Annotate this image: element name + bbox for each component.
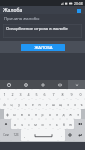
staticText: е <box>32 102 34 106</box>
button[interactable]: ъ <box>78 99 85 109</box>
button[interactable]: Оскорбление игрока в жалобе <box>3 24 82 38</box>
button[interactable]: 2 <box>8 89 16 99</box>
button[interactable]: о <box>46 109 53 119</box>
button[interactable]: и <box>39 119 46 129</box>
button[interactable]: 4 <box>24 89 32 99</box>
staticText: ю <box>69 122 72 126</box>
staticText: ц <box>10 102 13 106</box>
button[interactable]: й <box>0 99 8 109</box>
button[interactable]: у <box>15 99 22 109</box>
staticText: 2 <box>11 92 14 97</box>
staticText: э <box>77 112 79 116</box>
staticText: и <box>41 122 44 126</box>
button[interactable]: Удалить <box>74 119 85 129</box>
staticText: . <box>61 133 62 138</box>
button[interactable]: Свернуть <box>68 80 85 89</box>
staticText: 123 <box>13 133 19 137</box>
staticText: ш <box>52 102 55 106</box>
button[interactable]: е <box>29 99 36 109</box>
staticText: 1 <box>3 92 6 97</box>
button[interactable]: з <box>64 99 71 109</box>
staticText: 0 <box>79 92 82 97</box>
button[interactable]: Shift <box>0 119 11 129</box>
button[interactable]: в <box>18 109 25 119</box>
staticText: ч <box>21 122 23 126</box>
staticText: 9 <box>70 92 73 97</box>
button[interactable]: д <box>60 109 67 119</box>
staticText: ЖАЛОБА <box>34 45 53 51</box>
staticText: д <box>62 112 65 116</box>
button[interactable]: 5 <box>32 89 40 99</box>
button[interactable]: б <box>60 119 67 129</box>
button[interactable]: р <box>39 109 46 119</box>
button[interactable]: 8 <box>58 89 67 99</box>
button[interactable]: Отправить <box>75 7 82 14</box>
staticText: 6 <box>43 92 46 97</box>
button[interactable]: щ <box>57 99 64 109</box>
button[interactable]: 6 <box>40 89 49 99</box>
button[interactable]: Перемещение <box>34 80 51 89</box>
button[interactable]: Настройки <box>17 80 34 89</box>
staticText: 20:08 <box>74 1 83 6</box>
staticText: й <box>3 102 6 106</box>
button[interactable]: ч <box>18 119 25 129</box>
button[interactable]: ь <box>53 119 60 129</box>
staticText: р <box>41 112 44 116</box>
button[interactable]: , <box>21 129 28 141</box>
staticText: 3 <box>19 92 22 97</box>
staticText: х <box>74 102 76 106</box>
button[interactable]: ю <box>67 119 74 129</box>
button[interactable]: а <box>25 109 32 119</box>
staticText: 4 <box>27 92 30 97</box>
staticText: 5 <box>35 92 38 97</box>
staticText: т <box>49 122 51 126</box>
button[interactable]: ш <box>50 99 57 109</box>
button[interactable]: г <box>43 99 50 109</box>
button[interactable]: к <box>22 99 29 109</box>
staticText: 8 <box>61 92 64 97</box>
staticText: г <box>46 102 48 106</box>
staticText: а <box>28 112 30 116</box>
button[interactable]: . <box>58 129 65 141</box>
staticText: м <box>34 122 37 126</box>
button[interactable]: п <box>32 109 39 119</box>
button[interactable]: с <box>25 119 32 129</box>
button[interactable]: э <box>74 109 81 119</box>
button[interactable]: ж <box>67 109 74 119</box>
button[interactable]: 1 <box>0 89 8 99</box>
button[interactable]: Клавиатура <box>51 80 68 89</box>
button[interactable]: 123 <box>11 129 21 141</box>
staticText: в <box>21 112 23 116</box>
staticText: к <box>25 102 27 106</box>
button[interactable]: л <box>53 109 60 119</box>
button[interactable]: 3 <box>16 89 24 99</box>
button[interactable]: м <box>32 119 39 129</box>
staticText: , <box>24 133 25 138</box>
button[interactable]: т <box>46 119 53 129</box>
button[interactable]: Сим <box>0 129 11 141</box>
button[interactable]: я <box>11 119 18 129</box>
staticText: н <box>38 102 41 106</box>
staticText: с <box>28 122 30 126</box>
button[interactable]: Настройки <box>65 129 74 141</box>
button[interactable]: ы <box>11 109 18 119</box>
button[interactable]: Ввод <box>74 129 85 141</box>
button[interactable]: н <box>36 99 43 109</box>
button[interactable]: ц <box>8 99 15 109</box>
staticText: ь <box>56 122 58 126</box>
staticText: ф <box>6 112 9 116</box>
staticText: ж <box>69 112 72 116</box>
staticText: Оскорбление игрока в жалобе <box>6 26 68 32</box>
button[interactable]: 9 <box>67 89 76 99</box>
staticText: я <box>14 122 16 126</box>
button[interactable]: ЖАЛОБА <box>21 44 65 51</box>
button[interactable]: ф <box>4 109 11 119</box>
staticText: щ <box>59 102 62 106</box>
button[interactable]: х <box>71 99 78 109</box>
button[interactable]: Эмодзи <box>0 80 17 89</box>
staticText: з <box>67 102 69 106</box>
button[interactable]: 7 <box>49 89 58 99</box>
button[interactable]: Пробел <box>28 129 58 141</box>
button[interactable]: 0 <box>76 89 85 99</box>
staticText: 7 <box>52 92 55 97</box>
